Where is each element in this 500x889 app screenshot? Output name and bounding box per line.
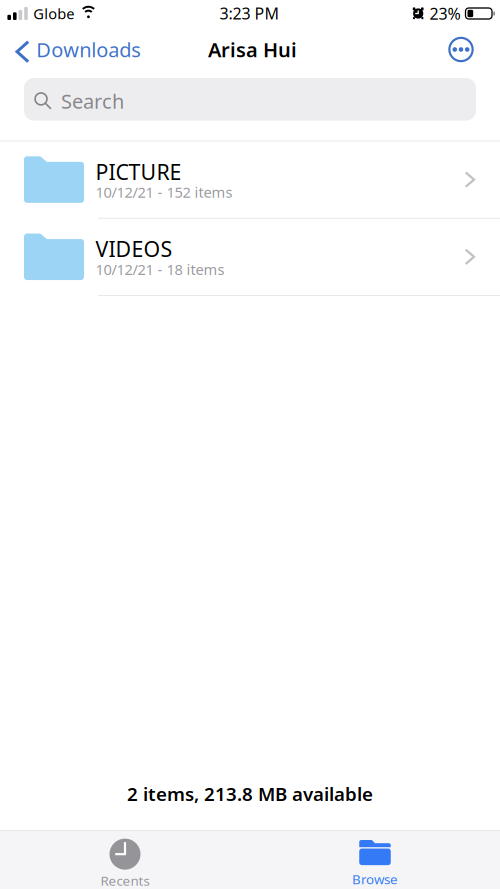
staticText: Search (61, 88, 124, 114)
staticText: 23% (429, 3, 460, 24)
button[interactable]: More options (439, 27, 483, 71)
button[interactable]: VIDEOS (0, 219, 500, 296)
staticText: 2 items, 213.8 MB available (127, 781, 373, 806)
staticText: 10/12/21 - 18 items (95, 259, 224, 279)
staticText: Arisa Hui (208, 36, 297, 63)
staticText: PICTURE (95, 157, 181, 186)
button[interactable]: Recents (0, 831, 250, 889)
staticText: Downloads (36, 36, 141, 63)
button[interactable]: Search (0, 72, 500, 141)
button[interactable]: Downloads (0, 30, 141, 69)
staticText: Browse (352, 870, 398, 888)
button[interactable]: Browse (250, 831, 500, 889)
staticText: Recents (100, 872, 149, 889)
staticText: 10/12/21 - 152 items (95, 182, 232, 202)
staticText: VIDEOS (95, 235, 172, 263)
staticText: Globe (33, 4, 74, 23)
button[interactable]: PICTURE (0, 141, 500, 219)
staticText: 3:23 PM (219, 3, 279, 24)
